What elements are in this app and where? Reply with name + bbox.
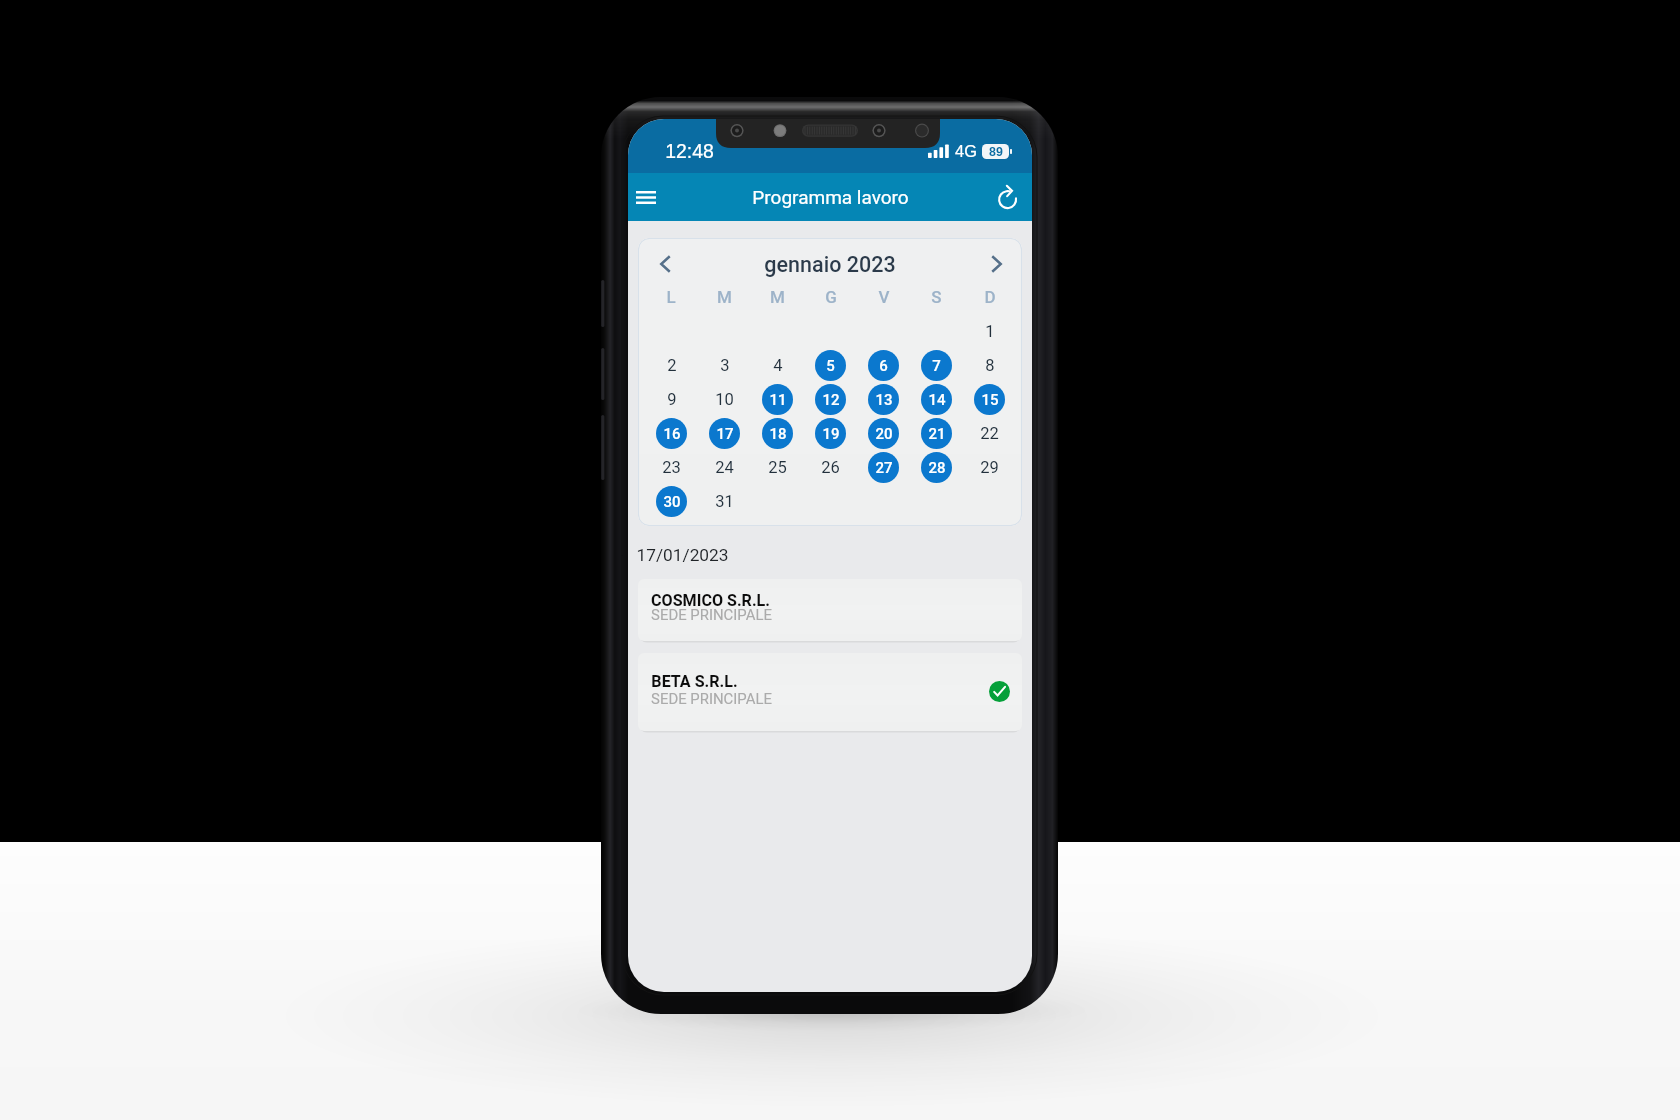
staticText: SEDE PRINCIPALE	[651, 690, 772, 707]
button[interactable]: 31	[709, 486, 740, 517]
button[interactable]: 19	[815, 418, 846, 449]
button[interactable]: 1	[974, 316, 1005, 347]
staticText: 29	[980, 458, 999, 477]
staticText: 10	[715, 390, 734, 409]
staticText: 12	[822, 391, 840, 409]
staticText: 19	[822, 425, 840, 443]
staticText: SEDE PRINCIPALE	[651, 606, 772, 623]
staticText: 25	[768, 458, 787, 477]
button[interactable]: 3	[709, 350, 740, 381]
button[interactable]: 6	[868, 350, 899, 381]
staticText: 1	[985, 322, 995, 341]
staticText: 4	[773, 356, 783, 375]
button[interactable]: 20	[868, 418, 899, 449]
button[interactable]: 11	[762, 384, 793, 415]
button[interactable]: 7	[921, 350, 952, 381]
staticText: Programma lavoro	[752, 186, 909, 208]
button[interactable]: 24	[709, 452, 740, 483]
staticText: D	[984, 287, 996, 307]
button[interactable]: 5	[815, 350, 846, 381]
button[interactable]: 10	[709, 384, 740, 415]
button[interactable]: 26	[815, 452, 846, 483]
button[interactable]: 22	[974, 418, 1005, 449]
button[interactable]: 23	[656, 452, 687, 483]
staticText: M	[717, 287, 732, 307]
button[interactable]: 2	[656, 350, 687, 381]
staticText: 13	[875, 391, 893, 409]
button[interactable]: 16	[656, 418, 687, 449]
button[interactable]: 17	[709, 418, 740, 449]
staticText: 20	[875, 425, 893, 443]
button[interactable]: BETA S.R.L.	[638, 653, 1022, 731]
staticText: 26	[821, 458, 840, 477]
staticText: S	[931, 287, 942, 307]
staticText: BETA S.R.L.	[651, 672, 738, 690]
button[interactable]: Previous month	[657, 250, 673, 278]
staticText: 27	[875, 459, 893, 477]
staticText: 11	[769, 391, 787, 409]
staticText: 21	[928, 425, 946, 443]
button[interactable]: COSMICO S.R.L.	[638, 579, 1022, 641]
button[interactable]: 14	[921, 384, 952, 415]
staticText: 8	[985, 356, 995, 375]
staticText: gennaio 2023	[764, 252, 896, 277]
staticText: 31	[715, 492, 734, 511]
staticText: 7	[932, 357, 941, 375]
staticText: 89	[989, 145, 1003, 159]
staticText: M	[770, 287, 785, 307]
button[interactable]: Open navigation menu	[628, 173, 664, 221]
button[interactable]: 25	[762, 452, 793, 483]
staticText: V	[878, 287, 890, 307]
button[interactable]: 30	[656, 486, 687, 517]
staticText: 15	[981, 391, 999, 409]
button[interactable]: 12	[815, 384, 846, 415]
button[interactable]: 29	[974, 452, 1005, 483]
staticText: 18	[769, 425, 787, 443]
staticText: 23	[662, 458, 681, 477]
staticText: 12:48	[665, 140, 714, 162]
staticText: 24	[715, 458, 734, 477]
staticText: 4G	[955, 142, 977, 160]
staticText: 6	[879, 357, 888, 375]
staticText: 17/01/2023	[636, 545, 729, 565]
staticText: 14	[928, 391, 946, 409]
staticText: 9	[667, 390, 677, 409]
button[interactable]: 18	[762, 418, 793, 449]
staticText: 5	[826, 357, 835, 375]
staticText: 17	[716, 425, 734, 443]
button[interactable]: 21	[921, 418, 952, 449]
staticText: 22	[980, 424, 999, 443]
staticText: 16	[663, 425, 681, 443]
staticText: 3	[720, 356, 730, 375]
button[interactable]: 8	[974, 350, 1005, 381]
staticText: G	[825, 287, 837, 307]
staticText: L	[666, 287, 676, 307]
staticText: 30	[663, 493, 681, 511]
staticText: COSMICO S.R.L.	[651, 591, 770, 609]
button[interactable]: 28	[921, 452, 952, 483]
staticText: 2	[667, 356, 677, 375]
button[interactable]: Next month	[988, 250, 1004, 278]
staticText: 28	[928, 459, 946, 477]
button[interactable]: 13	[868, 384, 899, 415]
button[interactable]: 4	[762, 350, 793, 381]
button[interactable]: 27	[868, 452, 899, 483]
button[interactable]: 9	[656, 384, 687, 415]
button[interactable]: Refresh	[985, 173, 1032, 221]
button[interactable]: 15	[974, 384, 1005, 415]
